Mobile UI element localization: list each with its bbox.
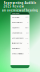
staticText: 142 h <box>24 16 28 18</box>
button[interactable]: Listening time <box>10 15 29 20</box>
staticText: Longest streak <box>11 32 22 34</box>
button[interactable]: Books finished <box>10 20 29 25</box>
button[interactable]: New authors <box>10 46 29 51</box>
staticText: Minutes per day <box>11 42 22 44</box>
button[interactable]: Longest streak <box>10 30 29 35</box>
staticText: 1.25x <box>24 37 28 39</box>
button[interactable]: Average speed <box>10 35 29 41</box>
button[interactable]: Top genre <box>10 25 29 30</box>
staticText: Series completed <box>11 53 23 55</box>
staticText: Your 2025 <box>11 12 19 14</box>
staticText: Listening time <box>11 16 19 18</box>
staticText: Top genre <box>11 27 19 29</box>
staticText: an overview of hearing <box>2 9 38 12</box>
staticText: Representing Audible 2025 Review <box>3 1 36 8</box>
staticText: Fiction <box>24 27 28 29</box>
staticText: 27 <box>26 22 28 23</box>
staticText: New authors <box>11 48 20 49</box>
staticText: 48 <box>26 42 28 44</box>
button[interactable]: Minutes per day <box>10 41 29 46</box>
staticText: Average speed <box>11 37 23 39</box>
staticText: Books finished <box>11 22 22 23</box>
button[interactable]: Series completed <box>10 51 29 56</box>
